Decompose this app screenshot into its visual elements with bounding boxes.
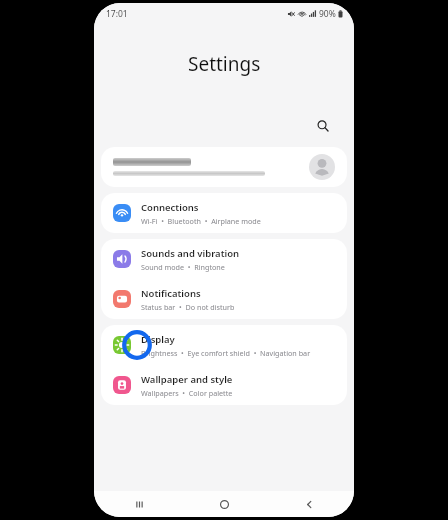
- button[interactable]: Wallpaper and style: [101, 365, 347, 405]
- button[interactable]: Connections: [101, 193, 347, 233]
- staticText: Status bar • Do not disturb: [141, 302, 235, 312]
- staticText: Brightness • Eye comfort shield • Naviga…: [141, 348, 311, 358]
- staticText: Connections: [141, 201, 199, 214]
- button[interactable]: [101, 147, 347, 187]
- button[interactable]: Recents: [128, 493, 150, 515]
- button[interactable]: Search: [312, 115, 334, 137]
- staticText: Sound mode • Ringtone: [141, 262, 225, 272]
- button[interactable]: Sounds and vibration: [101, 239, 347, 279]
- staticText: Wi-Fi • Bluetooth • Airplane mode: [141, 216, 261, 226]
- staticText: 17:01: [106, 8, 128, 20]
- button[interactable]: Display: [101, 325, 347, 365]
- staticText: Display: [141, 333, 175, 346]
- staticText: Wallpapers • Color palette: [141, 388, 233, 398]
- button[interactable]: Home: [213, 493, 235, 515]
- staticText: Wallpaper and style: [141, 373, 233, 386]
- staticText: 90%: [319, 8, 336, 20]
- staticText: Sounds and vibration: [141, 247, 240, 260]
- staticText: Notifications: [141, 287, 201, 300]
- button[interactable]: Back: [298, 493, 320, 515]
- button[interactable]: Notifications: [101, 279, 347, 319]
- staticText: Settings: [188, 51, 261, 77]
